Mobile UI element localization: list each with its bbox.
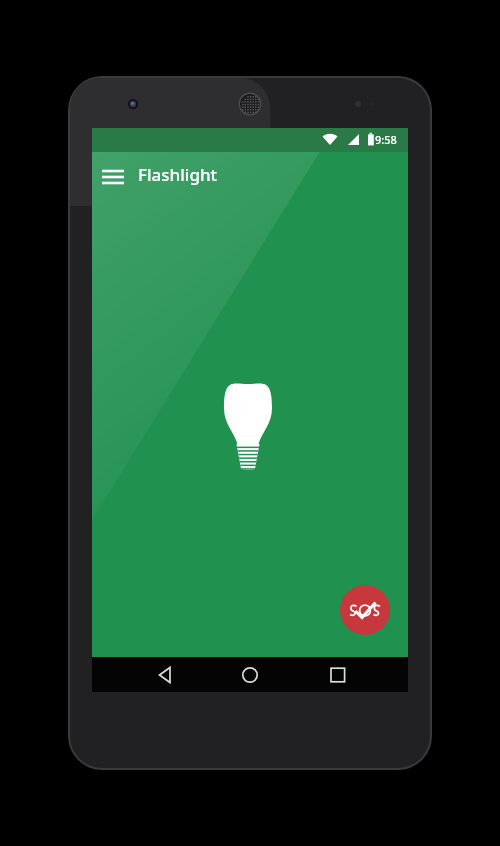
button[interactable]: Open navigation menu: [100, 164, 126, 190]
button[interactable]: SOS signal: [340, 585, 390, 635]
staticText: Flashlight: [138, 163, 218, 186]
staticText: 9:58: [375, 132, 397, 147]
button[interactable]: Toggle flashlight: [92, 200, 408, 657]
